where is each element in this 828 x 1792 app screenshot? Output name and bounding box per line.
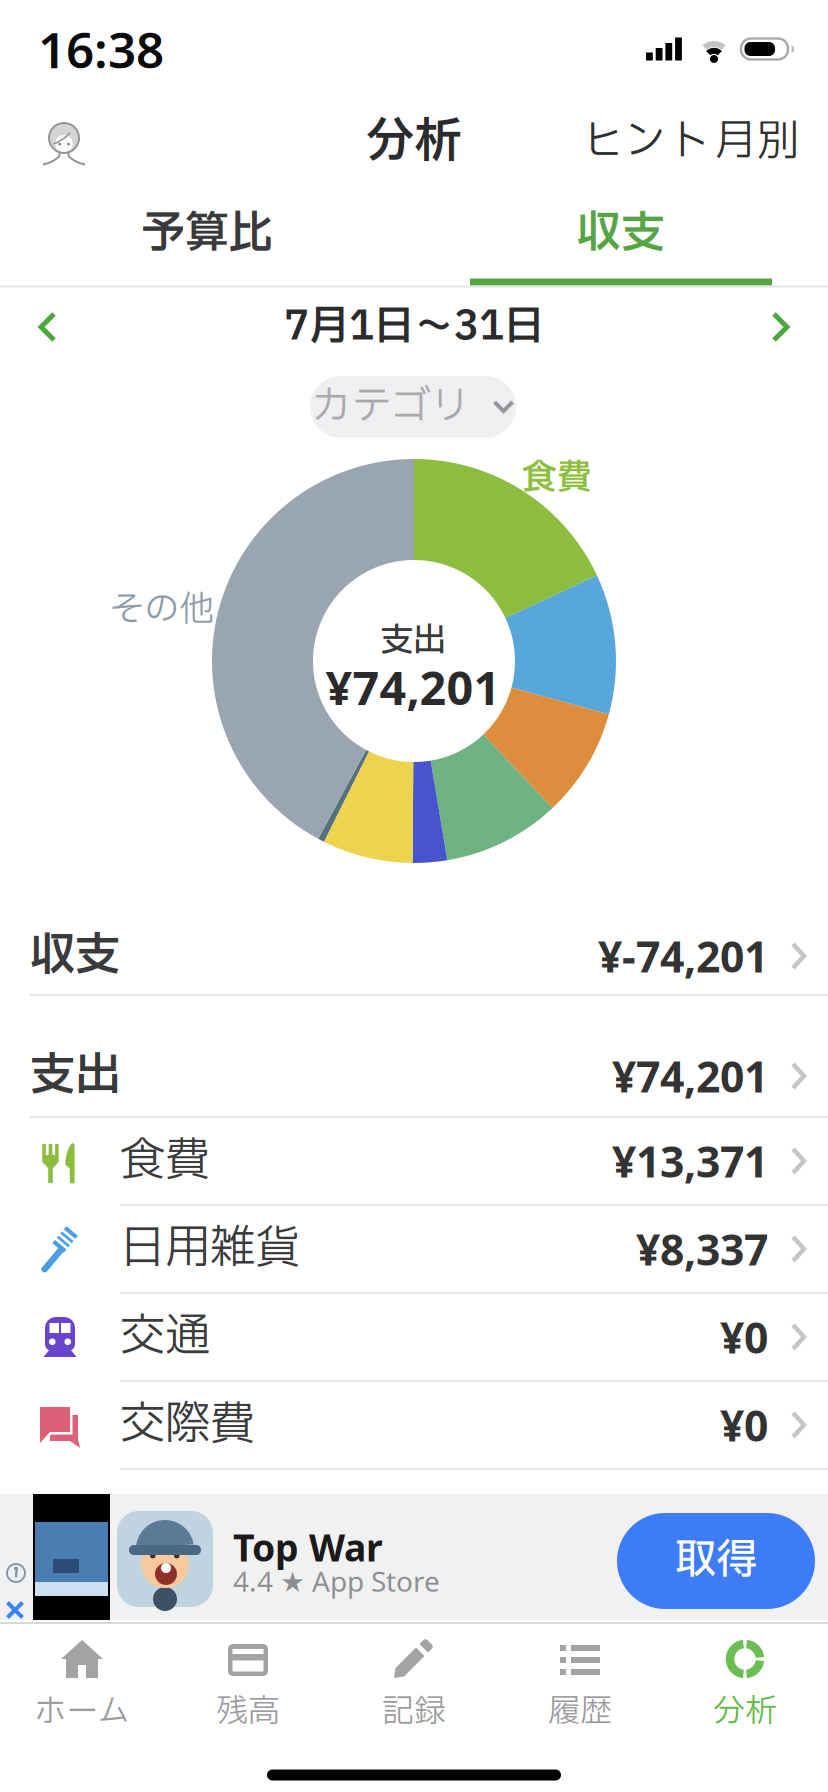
staticText: その他 — [109, 584, 214, 636]
staticText: ¥74,201 — [612, 1048, 768, 1104]
button[interactable]: ヒント — [571, 112, 721, 172]
staticText: Top War — [233, 1522, 383, 1572]
staticText: 履歴 — [548, 1688, 612, 1736]
button[interactable]: 交際費 — [0, 1381, 828, 1469]
button[interactable]: 広告情報 — [5, 1562, 27, 1584]
staticText: 7月1日〜31日 — [284, 297, 544, 357]
staticText: 4.4 ★ App Store — [233, 1562, 440, 1600]
staticText: ¥13,371 — [612, 1133, 768, 1189]
button[interactable]: ホーム — [2, 1626, 162, 1746]
button[interactable]: 前の期間 — [24, 303, 72, 351]
button[interactable]: カテゴリ — [310, 376, 516, 438]
staticText: カテゴリ — [311, 377, 470, 437]
staticText: 収支 — [577, 201, 665, 267]
button[interactable]: 収支 — [0, 912, 828, 1000]
staticText: ホーム — [34, 1688, 129, 1736]
button[interactable]: 月別 — [712, 112, 802, 172]
staticText: ヒント — [582, 110, 710, 174]
button[interactable]: プロフィール — [40, 119, 88, 167]
staticText: 分析 — [366, 106, 462, 178]
button[interactable]: 次の期間 — [756, 303, 804, 351]
button[interactable]: 予算比 — [0, 188, 414, 280]
staticText: 支出 — [30, 1042, 120, 1110]
staticText: 取得 — [675, 1530, 757, 1592]
staticText: 残高 — [216, 1688, 280, 1736]
staticText: 分析 — [713, 1688, 777, 1736]
staticText: ¥-74,201 — [598, 928, 768, 984]
button[interactable]: 残高 — [168, 1626, 328, 1746]
staticText: ¥74,201 — [325, 656, 500, 718]
button[interactable]: 支出 — [0, 1032, 828, 1120]
button[interactable]: 取得 — [617, 1513, 815, 1609]
button[interactable]: 履歴 — [500, 1626, 660, 1746]
staticText: 支出 — [380, 616, 446, 666]
staticText: 日用雑貨 — [120, 1215, 300, 1283]
staticText: 交通 — [120, 1303, 210, 1371]
button[interactable]: 収支 — [414, 188, 828, 280]
staticText: 記録 — [382, 1688, 446, 1736]
button[interactable]: 記録 — [334, 1626, 494, 1746]
staticText: 交際費 — [120, 1391, 255, 1459]
staticText: 食費 — [522, 452, 592, 504]
staticText: 予算比 — [141, 201, 273, 267]
staticText: ¥0 — [720, 1397, 768, 1453]
button[interactable]: 食費 — [0, 1117, 828, 1205]
staticText: 収支 — [30, 922, 120, 990]
staticText: 食費 — [120, 1127, 210, 1195]
button[interactable]: 分析 — [665, 1626, 825, 1746]
button[interactable]: 交通 — [0, 1293, 828, 1381]
staticText: 月別 — [714, 110, 800, 174]
staticText: 16:38 — [38, 16, 164, 82]
button[interactable]: 日用雑貨 — [0, 1205, 828, 1293]
staticText: ¥8,337 — [636, 1221, 768, 1277]
button[interactable]: 広告を閉じる — [4, 1599, 25, 1620]
staticText: ¥0 — [720, 1309, 768, 1365]
